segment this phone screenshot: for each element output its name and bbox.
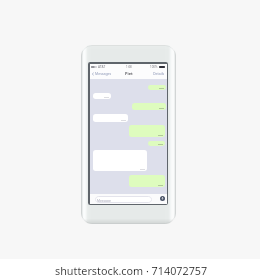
staticText: Messages (95, 71, 112, 76)
staticText: 100% (150, 65, 158, 69)
button[interactable] (129, 175, 165, 187)
button[interactable] (129, 125, 165, 137)
staticText: Message (97, 198, 111, 202)
button[interactable] (132, 103, 166, 110)
staticText: shutterstock.com · 714072757 (55, 263, 208, 278)
staticText: Piet (125, 71, 133, 76)
button[interactable]: Details (153, 71, 165, 76)
button[interactable]: Messages (92, 71, 112, 76)
staticText: 1:08 (126, 65, 132, 69)
button[interactable] (148, 85, 166, 90)
button[interactable]: Message (95, 196, 152, 203)
staticText: AT&T (98, 65, 106, 69)
button[interactable] (93, 93, 111, 99)
button[interactable]: Send (160, 196, 165, 201)
button[interactable] (148, 141, 165, 146)
button[interactable] (93, 114, 128, 122)
